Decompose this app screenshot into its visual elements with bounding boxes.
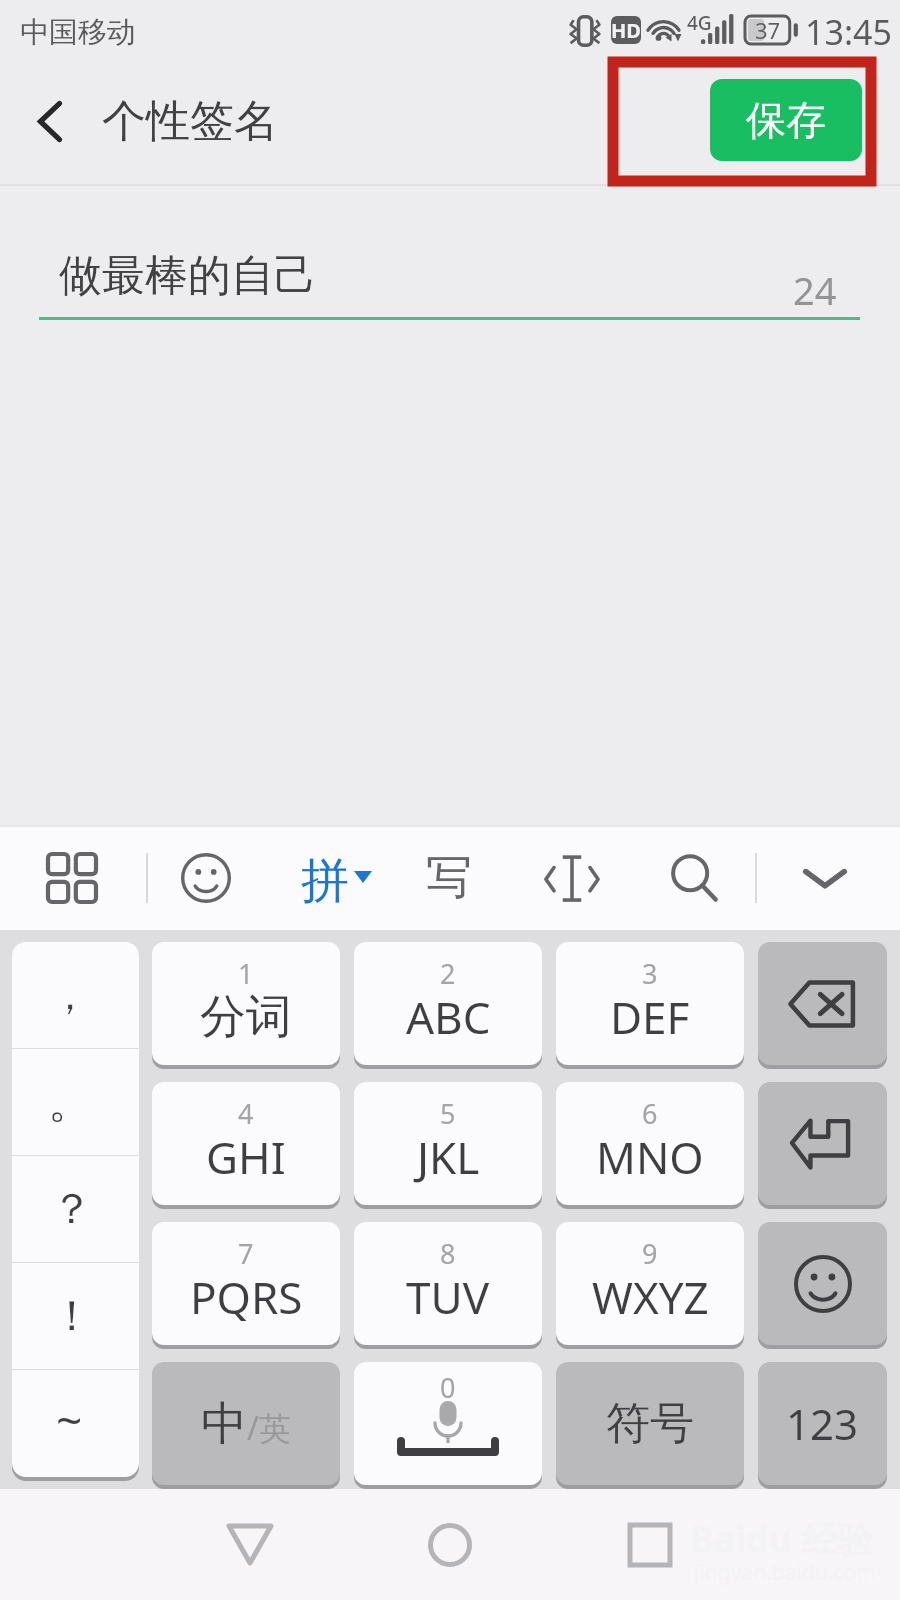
staticText: ABC: [406, 987, 491, 1047]
staticText: 37: [755, 15, 781, 43]
staticText: 中国移动: [20, 14, 136, 51]
staticText: 7: [238, 1235, 254, 1272]
staticText: 拼: [301, 851, 349, 911]
staticText: 13:45: [805, 9, 892, 55]
button[interactable]: 7: [152, 1222, 340, 1345]
button[interactable]: 。: [12, 1049, 139, 1156]
button[interactable]: 9: [556, 1222, 744, 1345]
staticText: 写: [426, 849, 472, 907]
button[interactable]: ！: [12, 1263, 139, 1370]
button[interactable]: ~: [12, 1370, 139, 1477]
staticText: 保存: [746, 95, 826, 145]
button[interactable]: Search: [656, 825, 732, 930]
staticText: 分词: [200, 988, 292, 1046]
button[interactable]: 5: [354, 1082, 542, 1205]
staticText: 个性签名: [102, 94, 278, 149]
staticText: 4: [238, 1095, 254, 1132]
staticText: 3: [642, 955, 658, 992]
staticText: PQRS: [190, 1267, 303, 1327]
staticText: WXYZ: [592, 1267, 709, 1327]
staticText: JKL: [417, 1127, 480, 1187]
staticText: 。: [48, 1075, 92, 1130]
button[interactable]: Move cursor: [534, 825, 610, 930]
button[interactable]: Back: [210, 1489, 290, 1600]
button[interactable]: Keyboard layouts: [34, 825, 110, 930]
button[interactable]: 1: [152, 942, 340, 1065]
button[interactable]: 8: [354, 1222, 542, 1345]
staticText: 8: [440, 1235, 456, 1272]
staticText: ！: [51, 1290, 93, 1343]
staticText: 6: [642, 1095, 658, 1132]
button[interactable]: Backspace: [758, 942, 887, 1065]
button[interactable]: Hide keyboard: [787, 825, 863, 930]
staticText: 123: [786, 1395, 859, 1452]
button[interactable]: Back: [10, 62, 90, 186]
staticText: 1: [238, 955, 254, 992]
button[interactable]: ？: [12, 1156, 139, 1263]
button[interactable]: 拼: [296, 825, 384, 930]
button[interactable]: 保存: [710, 79, 862, 161]
staticText: ，: [51, 972, 89, 1020]
staticText: ？: [51, 1183, 93, 1236]
button[interactable]: Emoji: [168, 825, 244, 930]
button[interactable]: 符号: [556, 1362, 744, 1485]
button[interactable]: 2: [354, 942, 542, 1065]
button[interactable]: 3: [556, 942, 744, 1065]
button[interactable]: 123: [758, 1362, 887, 1485]
button[interactable]: Enter: [758, 1082, 887, 1205]
button[interactable]: ，: [12, 942, 139, 1049]
staticText: 中: [201, 1395, 247, 1453]
staticText: /英: [247, 1406, 291, 1450]
button[interactable]: Home: [410, 1489, 490, 1600]
staticText: 9: [642, 1235, 658, 1272]
button[interactable]: Space / voice input: [354, 1362, 542, 1485]
button[interactable]: Emoji: [758, 1222, 887, 1345]
button[interactable]: 6: [556, 1082, 744, 1205]
staticText: HD: [611, 17, 641, 44]
staticText: MNO: [596, 1127, 704, 1187]
staticText: 5: [440, 1095, 456, 1132]
staticText: GHI: [206, 1127, 286, 1187]
staticText: 符号: [606, 1396, 694, 1451]
staticText: 24: [793, 264, 837, 316]
staticText: 0: [440, 1369, 456, 1406]
button[interactable]: 4: [152, 1082, 340, 1205]
staticText: DEF: [610, 987, 690, 1047]
staticText: 2: [440, 955, 456, 992]
staticText: ~: [56, 1388, 83, 1451]
button[interactable]: 写: [414, 825, 484, 930]
staticText: 做最棒的自己: [59, 249, 317, 303]
staticText: 4G: [687, 10, 712, 36]
button[interactable]: Recent apps: [610, 1489, 690, 1600]
staticText: TUV: [406, 1267, 490, 1327]
button[interactable]: 中: [152, 1362, 340, 1485]
